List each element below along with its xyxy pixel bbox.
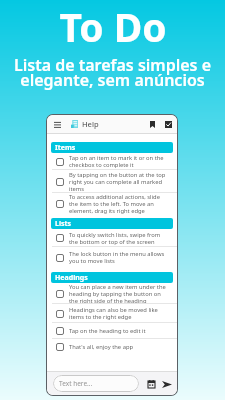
button[interactable]: Text here...: [53, 375, 139, 392]
button[interactable]: Items: [51, 142, 173, 153]
button[interactable]: By tapping on the button at the top righ…: [47, 170, 177, 193]
staticText: Headings: [55, 273, 88, 283]
button[interactable]: Send: [160, 377, 174, 391]
staticText: The lock button in the menu allows you t…: [69, 250, 169, 265]
staticText: Lists: [55, 219, 72, 229]
button[interactable]: Headings: [51, 272, 173, 283]
button[interactable]: Menu: [51, 118, 64, 131]
button[interactable]: Headings can also be moved like items to…: [47, 304, 177, 323]
button[interactable]: Tap on an item to mark it or on the chec…: [47, 153, 177, 170]
button[interactable]: To access additional actions, slide the …: [47, 193, 177, 214]
staticText: By tapping on the button at the top righ…: [69, 171, 169, 193]
staticText: Help: [82, 119, 99, 129]
button[interactable]: Tap on the heading to edit it: [47, 323, 177, 339]
staticText: Text here...: [59, 379, 93, 388]
staticText: To Do: [59, 0, 167, 53]
staticText: That's all, enjoy the app: [69, 343, 169, 351]
staticText: Tap on an item to mark it or on the chec…: [69, 154, 169, 169]
button[interactable]: Calendar: [144, 377, 158, 391]
button[interactable]: Complete all: [161, 115, 176, 133]
staticText: Headings can also be moved like items to…: [69, 306, 169, 321]
staticText: To access additional actions, slide the …: [69, 193, 169, 214]
button[interactable]: The lock button in the menu allows you t…: [47, 247, 177, 268]
staticText: Lista de tarefas simples e elegante, sem…: [14, 54, 211, 91]
staticText: Tap on the heading to edit it: [69, 327, 169, 335]
button[interactable]: Bookmark: [145, 115, 160, 133]
button[interactable]: That's all, enjoy the app: [47, 339, 177, 355]
button[interactable]: You can place a new item under the headi…: [47, 283, 177, 304]
button[interactable]: Lists: [51, 218, 173, 229]
staticText: To quickly switch lists, swipe from the …: [69, 231, 169, 246]
staticText: Items: [55, 143, 76, 153]
staticText: You can place a new item under the headi…: [69, 283, 169, 304]
button[interactable]: To quickly switch lists, swipe from the …: [47, 229, 177, 247]
